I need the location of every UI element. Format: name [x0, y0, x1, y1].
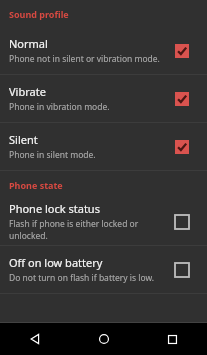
button[interactable]: Home: [69, 323, 138, 355]
staticText: Phone in silent mode.: [9, 149, 96, 161]
staticText: Sound profile: [9, 8, 69, 20]
button[interactable]: Off on low battery: [0, 246, 207, 293]
staticText: Do not turn on flash if battery is low.: [9, 272, 155, 284]
button[interactable]: Vibrate: [0, 75, 207, 122]
staticText: Silent: [9, 132, 38, 147]
button[interactable]: Off on low battery: [169, 257, 195, 283]
button[interactable]: Silent: [0, 123, 207, 170]
staticText: Off on low battery: [9, 255, 103, 270]
button[interactable]: Vibrate: [169, 86, 195, 112]
staticText: Flash if phone is either locked or unloc…: [9, 218, 161, 242]
staticText: Phone state: [9, 179, 63, 191]
button[interactable]: Normal: [0, 27, 207, 74]
staticText: Vibrate: [9, 84, 46, 99]
staticText: Normal: [9, 36, 48, 51]
button[interactable]: Phone lock status: [0, 198, 207, 245]
staticText: Phone not in silent or vibration mode.: [9, 53, 160, 65]
button[interactable]: Phone lock status: [169, 209, 195, 235]
staticText: Phone in vibration mode.: [9, 101, 110, 113]
button[interactable]: Recent apps: [138, 323, 207, 355]
button[interactable]: Normal: [169, 38, 195, 64]
button[interactable]: Silent: [169, 134, 195, 160]
staticText: Phone lock status: [9, 201, 100, 216]
button[interactable]: Back: [0, 323, 69, 355]
